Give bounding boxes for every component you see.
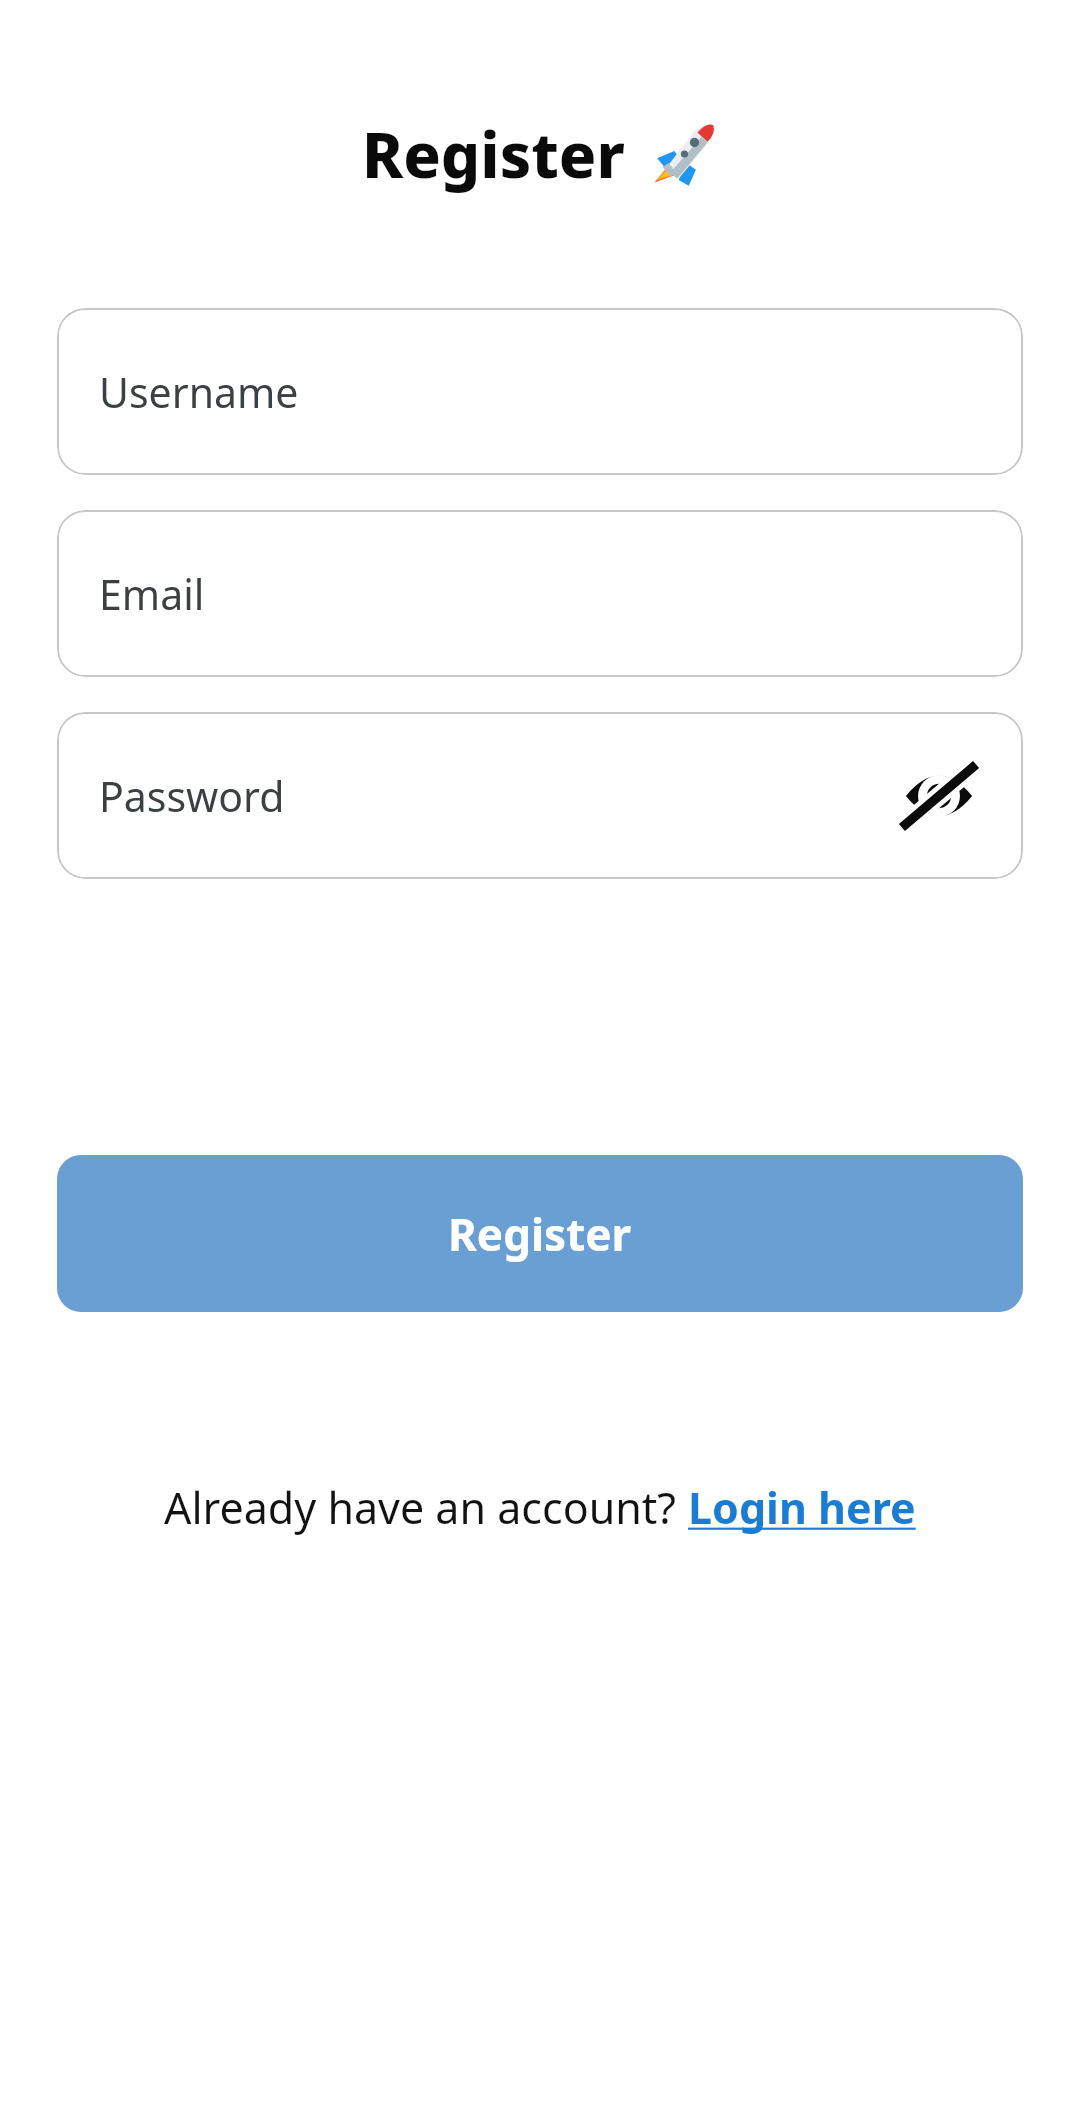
button[interactable]: Email [57,510,1023,677]
staticText: Username [99,364,299,420]
staticText: Login here [688,1478,916,1537]
button[interactable]: Toggle password visibility [897,754,981,838]
button[interactable]: Password [57,712,1023,879]
staticText: Already have an account? [164,1478,688,1537]
button[interactable]: Username [57,308,1023,475]
button[interactable]: Login here [688,1478,916,1537]
staticText: Email [99,566,205,622]
staticText: Password [99,768,285,824]
staticText: Register [448,1204,632,1264]
staticText: Register [362,112,625,196]
button[interactable]: Register [57,1155,1023,1312]
